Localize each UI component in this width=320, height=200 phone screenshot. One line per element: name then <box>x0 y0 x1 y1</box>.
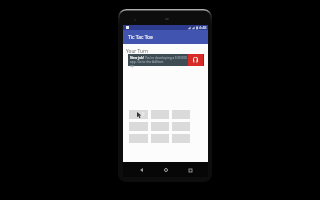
button[interactable]: Cell 1 <box>129 110 148 119</box>
button[interactable]: Home <box>160 164 172 176</box>
button[interactable]: New job! <box>128 54 204 66</box>
button[interactable]: Back <box>135 164 147 176</box>
staticText: New job! <box>130 56 144 60</box>
staticText: 4:48 <box>199 25 207 30</box>
staticText: Your Turn <box>126 48 148 55</box>
button[interactable]: Recent apps <box>184 164 196 176</box>
staticText: You're developing a $30 000 app <box>145 56 194 60</box>
staticText: Tic Tac Toe <box>128 34 153 41</box>
staticText: ap <box>130 64 134 68</box>
button[interactable]: Tic Tac Toe <box>123 30 208 44</box>
staticText: app. Go to the AdStart <box>130 60 164 64</box>
